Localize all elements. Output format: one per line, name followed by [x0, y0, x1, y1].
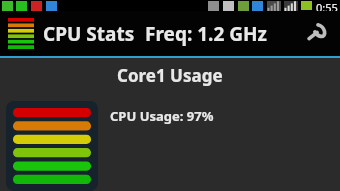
staticText: CPU Usage: 97%	[110, 107, 214, 125]
staticText: 0:55	[316, 0, 338, 11]
button[interactable]: Settings	[298, 17, 332, 51]
staticText: CPU Stats	[43, 21, 135, 47]
staticText: Freq: 1.2 GHz	[145, 21, 267, 47]
staticText: Core1 Usage	[117, 64, 223, 87]
button[interactable]: CPU usage gauge	[6, 101, 98, 191]
